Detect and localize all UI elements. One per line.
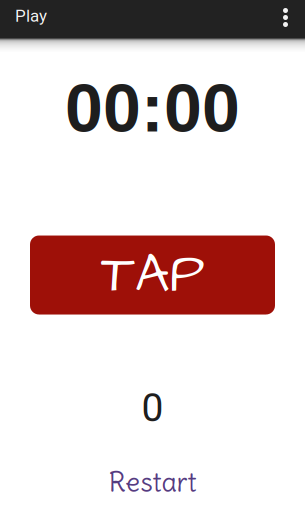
staticText: Play xyxy=(15,6,47,26)
button[interactable]: More options xyxy=(271,1,300,36)
staticText: TAP xyxy=(101,237,204,312)
staticText: 00:00 xyxy=(65,70,240,146)
button[interactable]: Restart xyxy=(77,463,227,501)
staticText: Restart xyxy=(108,465,196,499)
button[interactable]: TAP xyxy=(30,235,275,314)
staticText: 0 xyxy=(141,385,163,431)
